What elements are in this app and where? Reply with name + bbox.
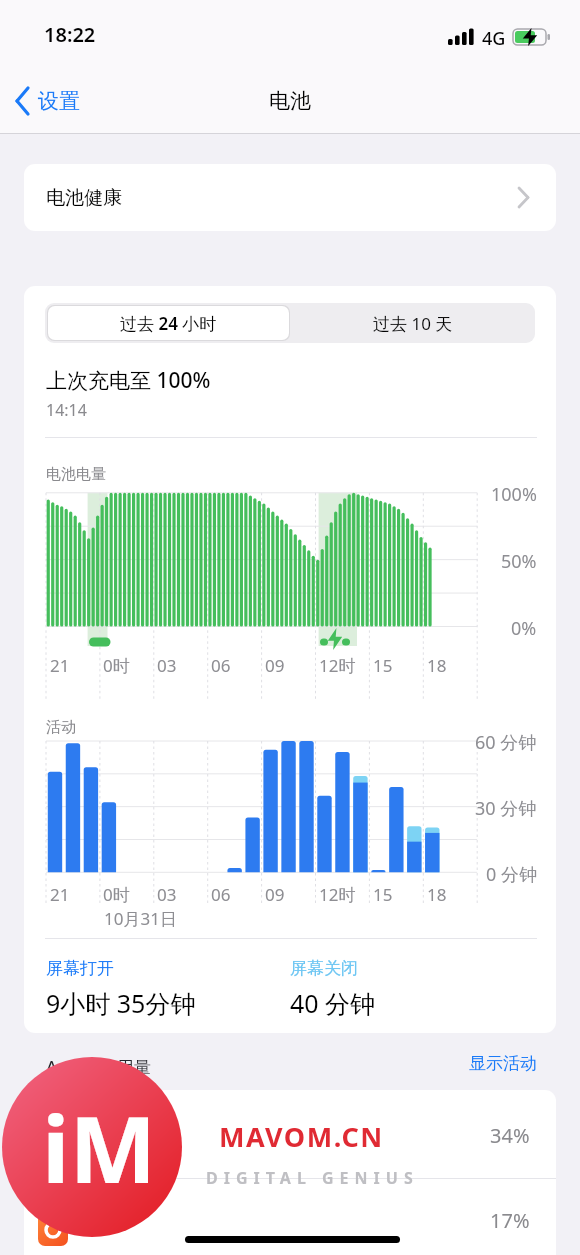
staticText: 03 (157, 883, 177, 906)
staticText: 18 (427, 883, 447, 906)
staticText: 21 (50, 883, 70, 906)
staticText: 电池电量 (46, 465, 106, 484)
staticText: 12时 (319, 883, 356, 906)
staticText: 21 (50, 654, 70, 677)
staticText: 15 (373, 654, 393, 677)
staticText: 4G (482, 26, 506, 51)
staticText: 09 (265, 654, 285, 677)
staticText: 电池 (269, 88, 311, 114)
staticText: 过去 24 小时 (120, 312, 217, 335)
staticText: 06 (211, 654, 231, 677)
staticText: DIGITAL GENIUS (206, 1167, 419, 1189)
staticText: 0时 (103, 654, 130, 677)
staticText: 30 分钟 (475, 796, 537, 821)
staticText: 电池健康 (46, 186, 122, 210)
staticText: 50% (501, 549, 537, 574)
staticText: 18 (427, 654, 447, 677)
staticText: 40 分钟 (290, 986, 376, 1020)
staticText: 14:14 (46, 399, 87, 421)
button[interactable]: 电池健康 (24, 164, 556, 231)
staticText: 100% (491, 482, 537, 507)
staticText: 03 (157, 654, 177, 677)
staticText: 60 分钟 (475, 730, 537, 755)
staticText: 15 (373, 883, 393, 906)
staticText: 06 (211, 883, 231, 906)
staticText: 17% (490, 1207, 530, 1234)
button[interactable]: 设置 (10, 84, 120, 120)
staticText: 上次充电至 100% (46, 366, 211, 395)
staticText: 34% (490, 1122, 530, 1149)
staticText: 显示活动 (469, 1053, 537, 1074)
button[interactable]: 34% (24, 1090, 556, 1178)
staticText: 屏幕打开 (46, 958, 114, 979)
staticText: 设置 (38, 88, 80, 114)
staticText: iM (42, 1085, 157, 1210)
staticText: 18:22 (44, 21, 96, 48)
button[interactable]: 显示活动 (400, 1053, 537, 1079)
button[interactable]: 过去 24 小时 (48, 306, 289, 340)
staticText: 屏幕关闭 (290, 958, 358, 979)
staticText: 9小时 35分钟 (46, 986, 196, 1020)
staticText: 过去 10 天 (373, 312, 453, 335)
staticText: 0% (511, 616, 537, 641)
staticText: MAVOM.CN (219, 1118, 384, 1155)
button[interactable]: 过去 10 天 (290, 303, 535, 343)
staticText: App 电池用量 (46, 1055, 151, 1078)
staticText: 活动 (46, 718, 76, 737)
staticText: 12时 (319, 654, 356, 677)
staticText: 09 (265, 883, 285, 906)
staticText: 10月31日 (104, 907, 177, 930)
staticText: 0时 (103, 883, 130, 906)
staticText: 0 分钟 (486, 862, 537, 887)
button[interactable]: 17% (24, 1179, 556, 1255)
